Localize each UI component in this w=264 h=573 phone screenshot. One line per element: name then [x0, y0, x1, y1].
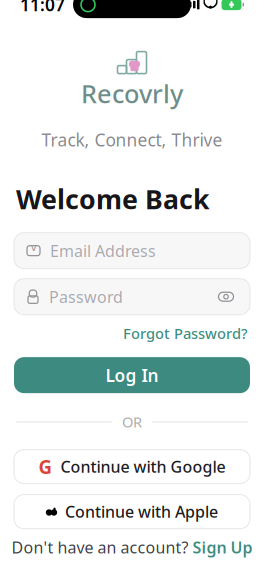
- staticText: Password: [49, 286, 123, 307]
- staticText: Continue with Apple: [65, 501, 218, 522]
- staticText: OR: [122, 412, 142, 432]
- staticText: v: [31, 240, 36, 254]
- staticText: 11:07: [20, 0, 65, 16]
- staticText: Don't have an account?: [11, 537, 188, 558]
- button[interactable]: Show password: [215, 286, 237, 308]
- button[interactable]: Forgot Password?: [123, 324, 248, 343]
- staticText: Forgot Password?: [123, 324, 248, 343]
- staticText: Sign Up: [192, 537, 252, 558]
- staticText: Log In: [105, 364, 158, 387]
- staticText: Email Address: [50, 240, 156, 261]
- button[interactable]: Continue with Apple: [14, 495, 250, 529]
- staticText: Recovrly: [81, 77, 183, 110]
- staticText: Track, Connect, Thrive: [41, 128, 222, 151]
- button[interactable]: Don't have an account?: [11, 537, 252, 558]
- button[interactable]: Log In: [14, 357, 250, 393]
- staticText: G: [38, 454, 52, 479]
- button[interactable]: G: [14, 450, 250, 484]
- staticText: Continue with Google: [60, 456, 225, 477]
- staticText: Welcome Back: [16, 181, 210, 217]
